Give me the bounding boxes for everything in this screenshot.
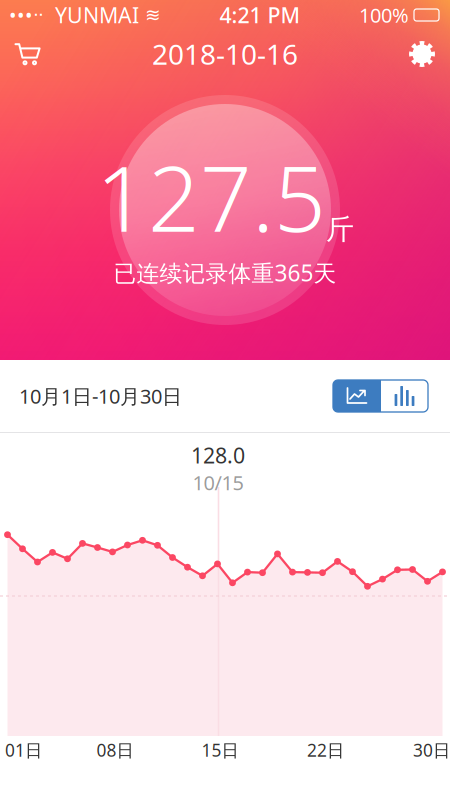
staticText: 100%: [359, 2, 414, 28]
staticText: 127.5: [96, 136, 326, 257]
staticText: 10/15: [192, 469, 243, 496]
staticText: 22日: [307, 738, 344, 761]
button[interactable]: Settings: [394, 30, 450, 78]
staticText: 128.0: [191, 441, 245, 469]
staticText: 4:21 PM: [219, 1, 300, 29]
button[interactable]: Line chart: [333, 380, 381, 412]
staticText: 30日: [413, 738, 450, 761]
staticText: YUNMAI: [43, 1, 145, 29]
staticText: 已连续记录体重365天: [113, 258, 336, 288]
staticText: 10月1日-10月30日: [19, 383, 182, 409]
staticText: •••ᐧᐧ: [9, 2, 43, 28]
staticText: 2018-10-16: [152, 35, 298, 73]
staticText: 15日: [201, 738, 238, 761]
staticText: ≋: [145, 4, 161, 26]
staticText: 08日: [96, 738, 133, 761]
staticText: 斤: [326, 212, 354, 247]
staticText: 01日: [5, 738, 42, 761]
button[interactable]: Shop: [0, 30, 56, 78]
button[interactable]: Bar chart: [381, 380, 428, 412]
